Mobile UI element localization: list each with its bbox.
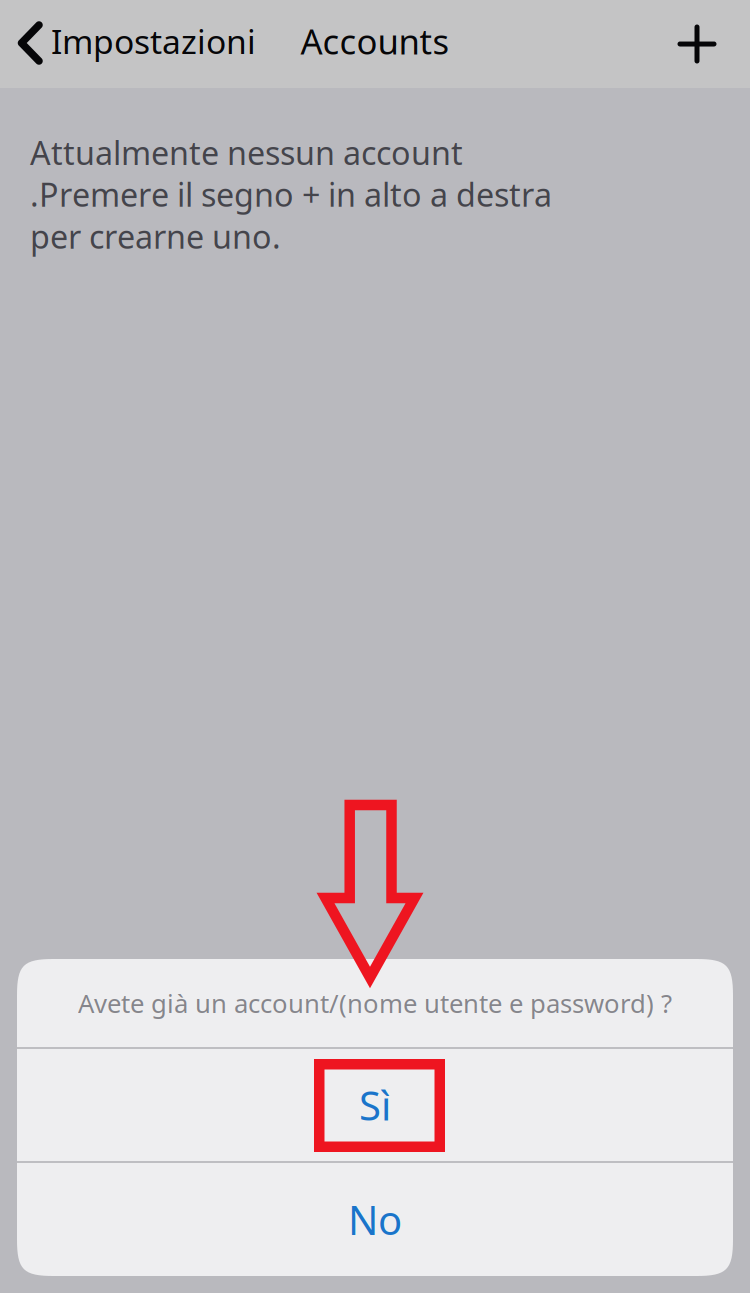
staticText: per crearne uno. [30, 215, 281, 257]
button[interactable]: Sì [17, 1049, 733, 1161]
staticText: .Premere il segno + in alto a destra [30, 173, 552, 216]
staticText: Impostazioni [51, 19, 256, 63]
button[interactable]: Add account [644, 0, 750, 88]
button[interactable]: No [17, 1163, 733, 1276]
button[interactable]: Impostazioni [0, 0, 268, 88]
staticText: Sì [359, 1078, 391, 1131]
staticText: No [348, 1193, 402, 1246]
staticText: Accounts [300, 18, 449, 64]
staticText: Attualmente nessun account [30, 131, 463, 174]
staticText: Avete già un account/(nome utente e pass… [78, 986, 672, 1020]
